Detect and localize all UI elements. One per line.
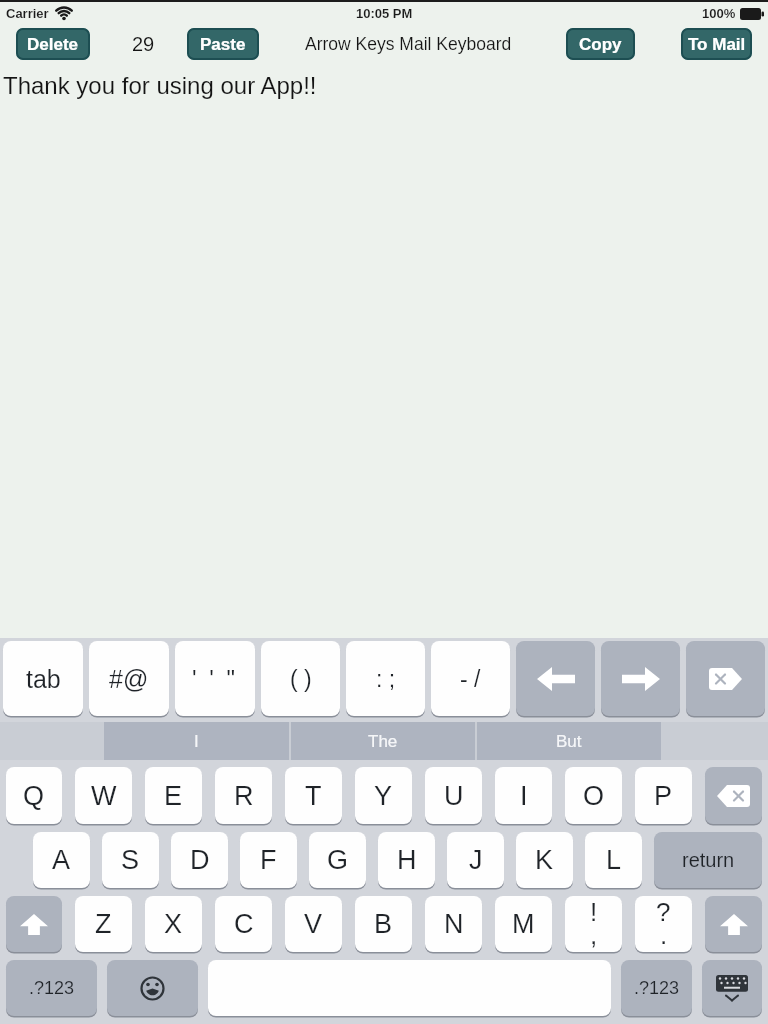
- button[interactable]: B: [355, 896, 412, 952]
- button[interactable]: [705, 767, 762, 824]
- button[interactable]: tab: [3, 641, 83, 716]
- staticText: E: [164, 781, 183, 811]
- staticText: - /: [460, 666, 481, 692]
- staticText: .?123: [634, 978, 680, 998]
- staticText: O: [583, 781, 605, 811]
- button[interactable]: P: [635, 767, 692, 824]
- staticText: ( ): [290, 666, 312, 692]
- button[interactable]: W: [75, 767, 132, 824]
- staticText: 100%: [702, 6, 736, 21]
- staticText: I: [194, 732, 199, 751]
- button[interactable]: Z: [75, 896, 132, 952]
- staticText: Q: [23, 781, 45, 811]
- button[interactable]: L: [585, 832, 642, 888]
- button[interactable]: V: [285, 896, 342, 952]
- staticText: D: [190, 845, 210, 875]
- button[interactable]: D: [171, 832, 228, 888]
- staticText: B: [374, 909, 393, 939]
- button[interactable]: E: [145, 767, 202, 824]
- button[interactable]: ( ): [261, 641, 340, 716]
- staticText: R: [234, 781, 254, 811]
- button[interactable]: #@: [89, 641, 169, 716]
- staticText: M: [512, 909, 535, 939]
- button[interactable]: Q: [6, 767, 62, 824]
- staticText: X: [164, 909, 183, 939]
- staticText: ' ' ": [192, 665, 239, 692]
- staticText: Delete: [27, 35, 79, 54]
- button[interactable]: S: [102, 832, 159, 888]
- staticText: H: [397, 845, 417, 875]
- staticText: V: [304, 909, 323, 939]
- button[interactable]: Paste: [187, 28, 259, 60]
- button[interactable]: [601, 641, 680, 716]
- button[interactable]: I: [495, 767, 552, 824]
- button[interactable]: C: [215, 896, 272, 952]
- button[interactable]: T: [285, 767, 342, 824]
- button[interactable]: J: [447, 832, 504, 888]
- button[interactable]: Copy: [566, 28, 635, 60]
- button[interactable]: - /: [431, 641, 510, 716]
- button[interactable]: [208, 960, 611, 1016]
- button[interactable]: O: [565, 767, 622, 824]
- staticText: L: [606, 845, 622, 875]
- button[interactable]: N: [425, 896, 482, 952]
- button[interactable]: M: [495, 896, 552, 952]
- button[interactable]: F: [240, 832, 297, 888]
- staticText: S: [121, 845, 140, 875]
- staticText: T: [305, 781, 322, 811]
- staticText: ?: [656, 897, 671, 926]
- staticText: Thank you for using our App!!: [3, 72, 317, 99]
- staticText: ,: [590, 920, 598, 949]
- staticText: 10:05 PM: [356, 6, 413, 21]
- button[interactable]: H: [378, 832, 435, 888]
- button[interactable]: K: [516, 832, 573, 888]
- staticText: I: [520, 781, 528, 811]
- button[interactable]: Y: [355, 767, 412, 824]
- staticText: U: [444, 781, 464, 811]
- staticText: To Mail: [688, 35, 746, 54]
- staticText: F: [260, 845, 277, 875]
- staticText: 29: [132, 33, 155, 55]
- button[interactable]: .?123: [621, 960, 692, 1016]
- button[interactable]: Delete: [16, 28, 90, 60]
- staticText: return: [682, 849, 735, 871]
- staticText: W: [91, 781, 117, 811]
- button[interactable]: I: [104, 722, 289, 760]
- staticText: P: [654, 781, 673, 811]
- staticText: : ;: [376, 666, 396, 692]
- button[interactable]: R: [215, 767, 272, 824]
- staticText: tab: [26, 665, 61, 693]
- button[interactable]: [107, 960, 198, 1016]
- button[interactable]: U: [425, 767, 482, 824]
- staticText: G: [327, 845, 349, 875]
- button[interactable]: !: [565, 896, 622, 952]
- button[interactable]: [702, 960, 762, 1016]
- staticText: But: [556, 732, 582, 751]
- button[interactable]: ' ' ": [175, 641, 255, 716]
- staticText: A: [52, 845, 71, 875]
- staticText: .: [660, 920, 668, 949]
- button[interactable]: But: [477, 722, 661, 760]
- button[interactable]: return: [654, 832, 762, 888]
- button[interactable]: [516, 641, 595, 716]
- staticText: #@: [109, 665, 149, 693]
- button[interactable]: [6, 896, 62, 952]
- button[interactable]: [686, 641, 765, 716]
- staticText: K: [535, 845, 554, 875]
- button[interactable]: .?123: [6, 960, 97, 1016]
- button[interactable]: ?: [635, 896, 692, 952]
- staticText: Carrier: [6, 6, 49, 21]
- button[interactable]: To Mail: [681, 28, 752, 60]
- button[interactable]: [705, 896, 762, 952]
- staticText: J: [469, 845, 483, 875]
- button[interactable]: The: [291, 722, 475, 760]
- staticText: The: [368, 732, 398, 751]
- button[interactable]: : ;: [346, 641, 425, 716]
- button[interactable]: G: [309, 832, 366, 888]
- staticText: Y: [374, 781, 393, 811]
- button[interactable]: X: [145, 896, 202, 952]
- button[interactable]: A: [33, 832, 90, 888]
- staticText: C: [234, 909, 254, 939]
- staticText: Z: [95, 909, 112, 939]
- staticText: Copy: [579, 35, 622, 54]
